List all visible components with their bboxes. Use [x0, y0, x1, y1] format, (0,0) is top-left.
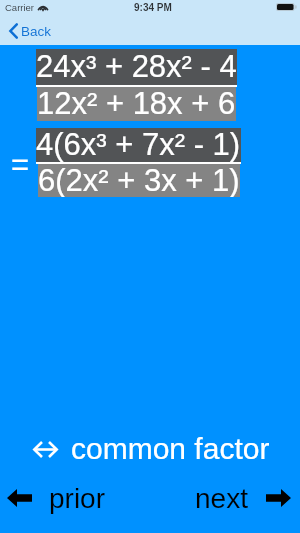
other: prior	[7, 489, 32, 507]
staticText: 24x³ + 28x² - 4	[36, 50, 237, 84]
other: next	[266, 489, 291, 507]
staticText: prior	[49, 481, 106, 515]
staticText: Back	[21, 24, 52, 39]
button[interactable]: next	[195, 481, 291, 515]
staticText: next	[195, 481, 248, 515]
staticText: 4(6x³ + 7x² - 1)	[36, 128, 241, 162]
staticText: 9:34 PM	[134, 2, 172, 13]
staticText: common factor	[71, 433, 270, 465]
button[interactable]: common factor	[33, 433, 300, 465]
staticText: 12x² + 18x + 6	[37, 87, 236, 121]
button[interactable]: Back	[9, 23, 52, 39]
staticText: =	[11, 148, 30, 182]
staticText: 6(2x² + 3x + 1)	[38, 164, 240, 197]
button[interactable]: prior	[7, 481, 106, 515]
staticText: Carrier	[5, 2, 35, 13]
